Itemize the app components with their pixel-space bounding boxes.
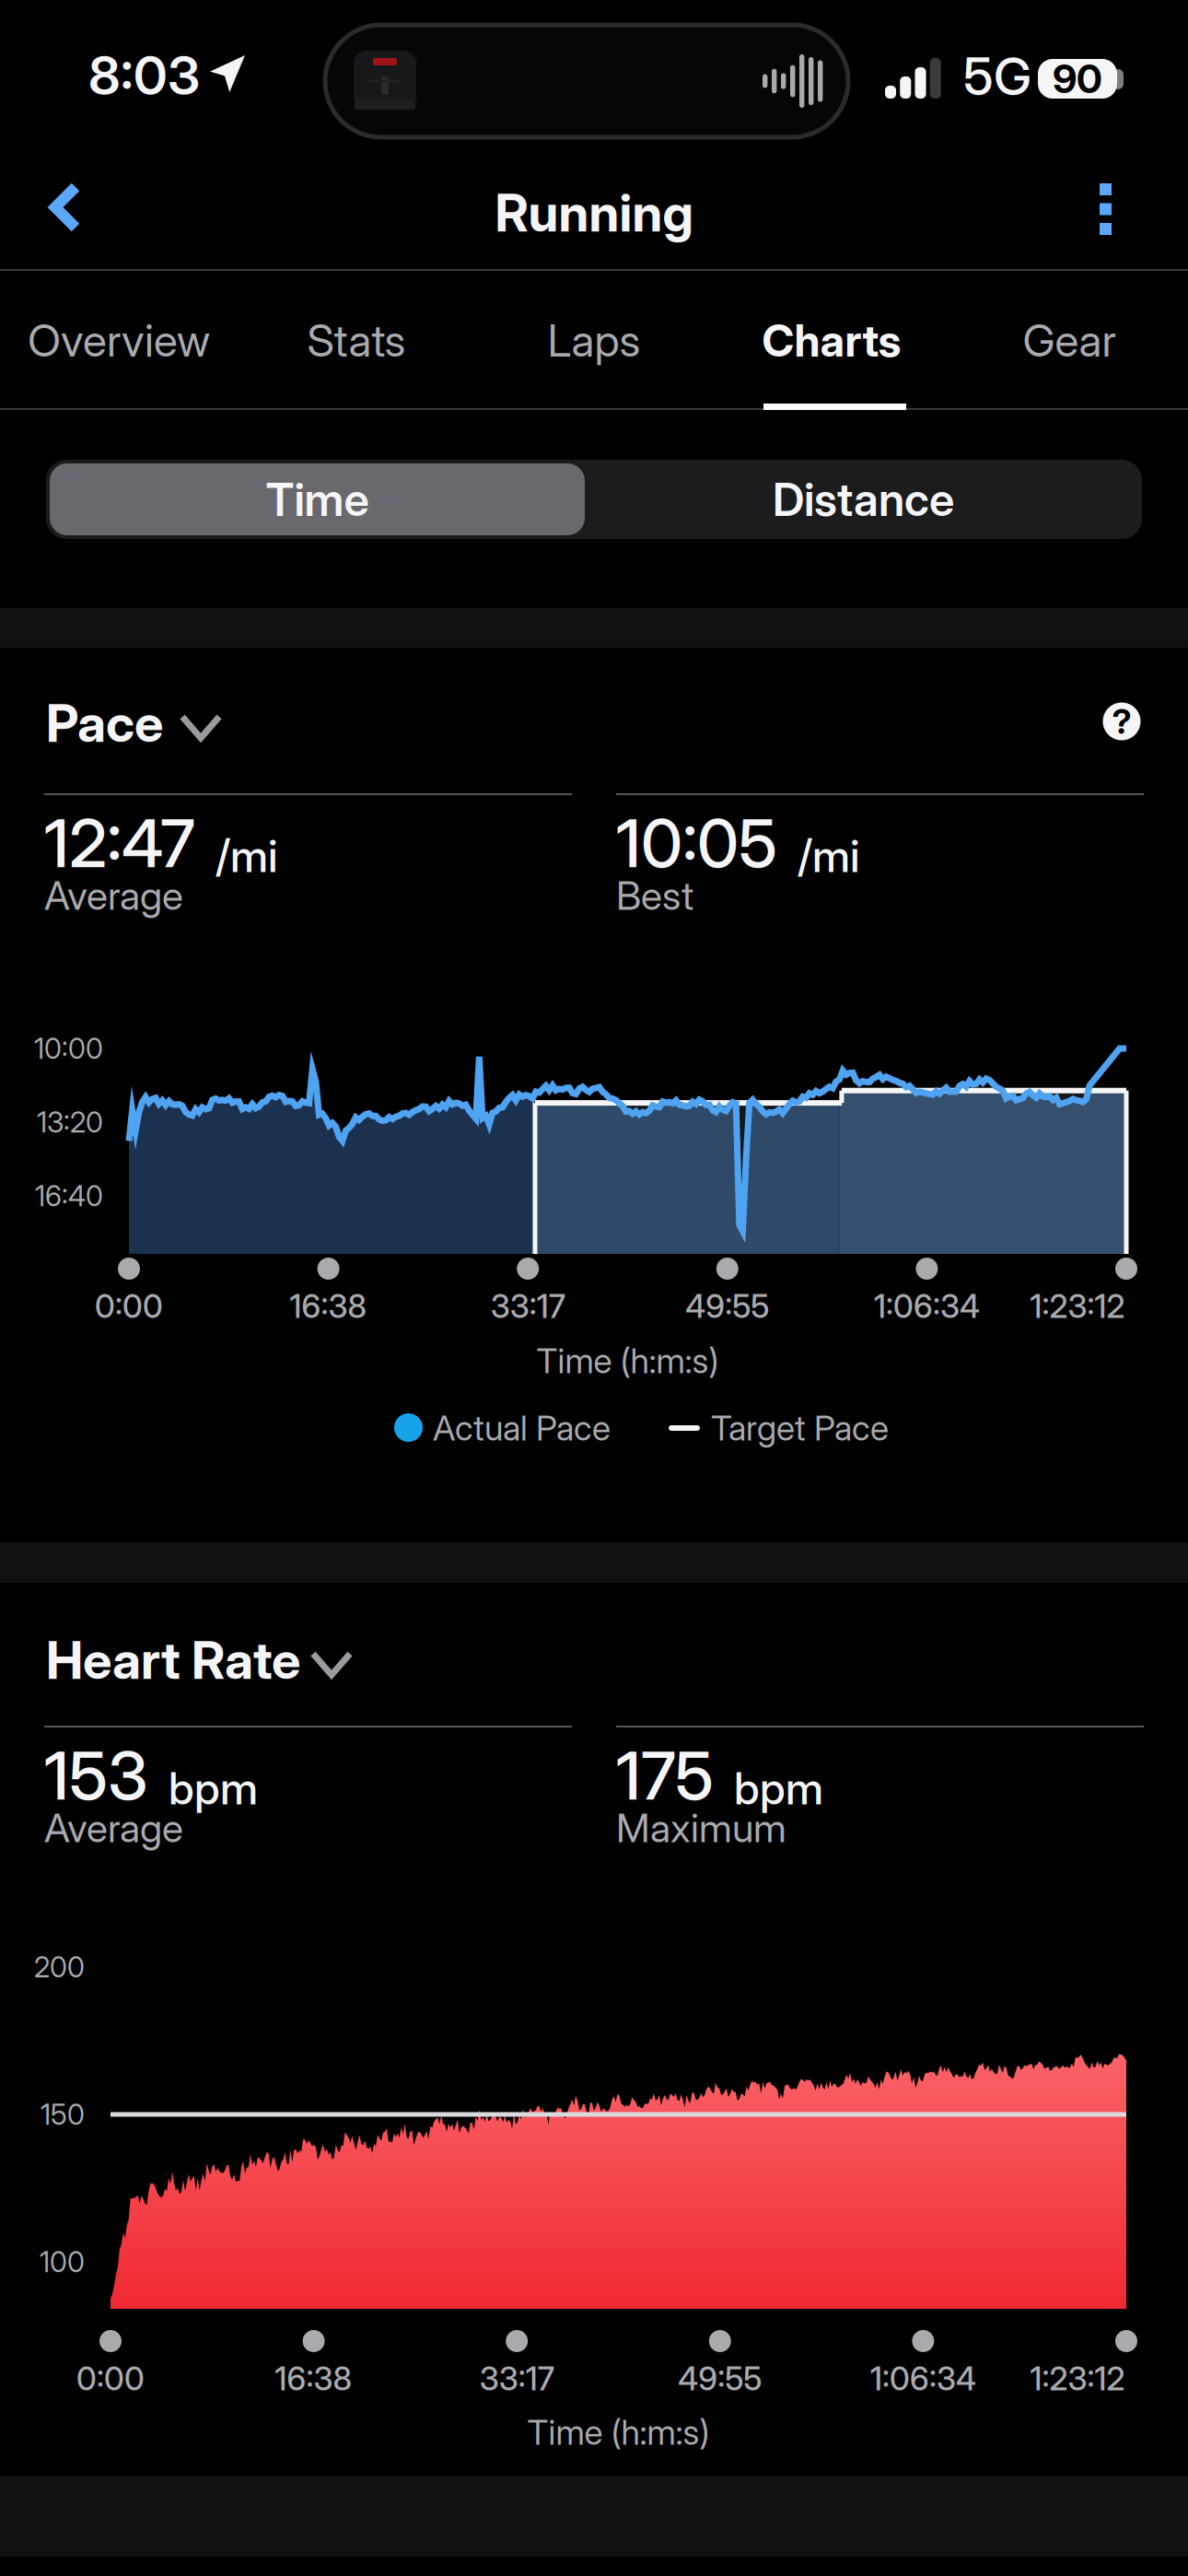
staticText: Overview — [28, 314, 210, 366]
staticText: Laps — [547, 314, 641, 366]
staticText: 33:17 — [480, 2360, 554, 2398]
staticText: Running — [495, 182, 693, 243]
staticText: 1:06:34 — [870, 2360, 976, 2398]
button[interactable]: About this chart — [1080, 689, 1163, 754]
staticText: 16:40 — [35, 1179, 103, 1213]
staticText: 10:00 — [34, 1032, 103, 1065]
staticText: Time (h:m:s) — [527, 2412, 710, 2453]
staticText: 8:03 — [88, 44, 200, 107]
button[interactable]: Back — [0, 157, 138, 269]
staticText: 16:38 — [275, 2360, 352, 2398]
staticText: 1:23:12 — [1030, 2360, 1125, 2398]
staticText: Average — [44, 872, 183, 919]
staticText: Maximum — [616, 1805, 786, 1851]
staticText: 0:00 — [76, 2360, 145, 2398]
button[interactable]: Stats — [238, 271, 475, 410]
staticText: Distance — [773, 473, 954, 526]
staticText: bpm — [148, 1762, 258, 1814]
staticText: 49:55 — [685, 1288, 769, 1325]
staticText: Time — [266, 473, 369, 526]
staticText: Pace — [46, 693, 163, 754]
button[interactable]: Distance — [588, 463, 1138, 535]
staticText: 13:20 — [37, 1105, 103, 1139]
staticText: 12:47 — [44, 804, 195, 882]
staticText: 10:05 — [616, 804, 777, 882]
button[interactable]: Overview — [0, 271, 238, 410]
staticText: /mi — [777, 830, 860, 882]
button[interactable]: Time — [50, 463, 585, 535]
staticText: 153 — [44, 1736, 148, 1814]
staticText: 150 — [41, 2098, 85, 2131]
staticText: 33:17 — [491, 1288, 565, 1325]
staticText: 175 — [616, 1736, 714, 1814]
button[interactable]: Pace — [46, 698, 525, 763]
staticText: 5G — [963, 46, 1031, 107]
staticText: Target Pace — [711, 1408, 889, 1448]
staticText: Stats — [307, 314, 406, 366]
staticText: 90 — [1053, 56, 1102, 102]
staticText: Actual Pace — [433, 1408, 611, 1448]
staticText: Time (h:m:s) — [536, 1341, 719, 1381]
button[interactable]: Heart Rate — [46, 1635, 525, 1700]
staticText: 100 — [40, 2245, 85, 2279]
staticText: Heart Rate — [46, 1630, 300, 1691]
staticText: /mi — [195, 830, 278, 882]
staticText: ? — [1112, 701, 1131, 742]
button[interactable]: Laps — [475, 271, 713, 410]
staticText: 0:00 — [95, 1288, 163, 1325]
staticText: 49:55 — [678, 2360, 762, 2398]
staticText: bpm — [714, 1762, 823, 1814]
staticText: Gear — [1023, 314, 1116, 366]
staticText: 200 — [34, 1950, 85, 1984]
staticText: Average — [44, 1805, 183, 1851]
staticText: Best — [616, 872, 693, 919]
staticText: 16:38 — [290, 1288, 367, 1325]
button[interactable]: More options — [1050, 157, 1188, 269]
staticText: 1:23:12 — [1030, 1288, 1125, 1325]
button[interactable]: Charts — [713, 271, 950, 410]
staticText: 1:06:34 — [874, 1288, 980, 1325]
button[interactable]: Gear — [950, 271, 1188, 410]
staticText: Charts — [762, 314, 901, 366]
